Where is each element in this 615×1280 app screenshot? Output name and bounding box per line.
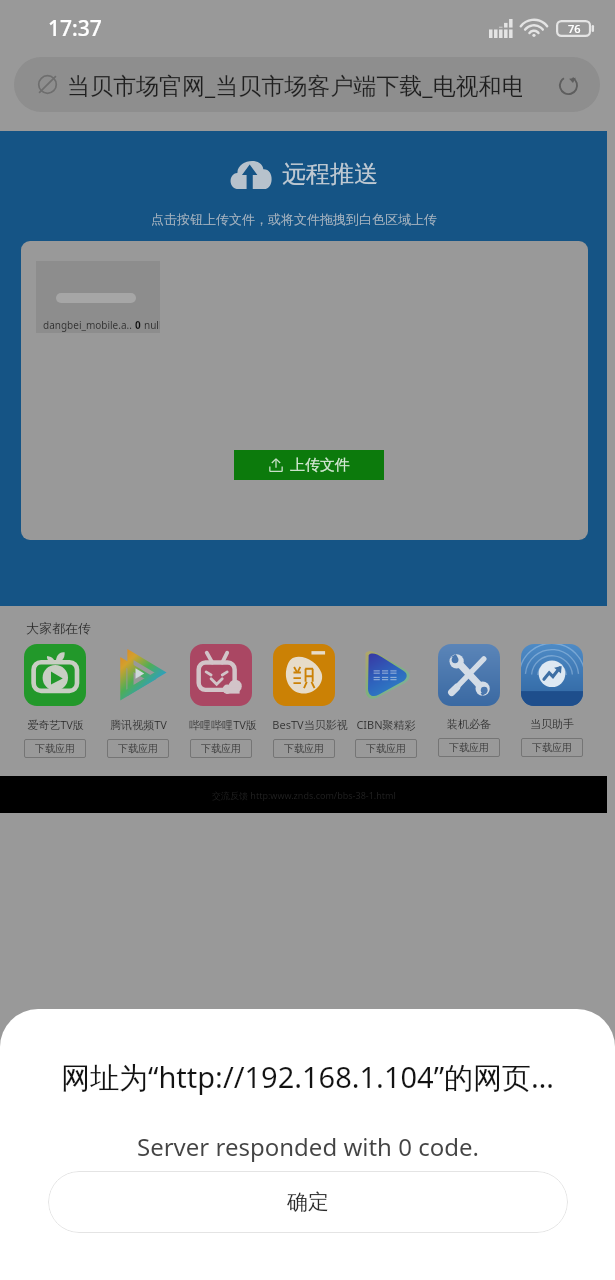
staticText: 确定 xyxy=(287,1189,329,1215)
staticText: null xyxy=(144,318,160,332)
staticText: 哔哩哔哩TV版 xyxy=(189,717,253,732)
staticText: 当贝助手 xyxy=(530,717,574,731)
button[interactable]: 下载应用 xyxy=(273,739,335,758)
button[interactable]: 哔哩哔哩TV版 xyxy=(189,644,253,758)
staticText: 点击按钮上传文件，或将文件拖拽到白色区域上传 xyxy=(151,211,437,227)
staticText: 交流反馈 http:www.znds.com/bbs-38-1.html xyxy=(212,789,396,801)
staticText: 腾讯视频TV xyxy=(110,717,167,732)
staticText: 当贝市场官网_当贝市场客户端下载_电视和电视盒子应用市场 xyxy=(67,69,522,100)
button[interactable]: 上传文件 xyxy=(234,450,384,480)
button[interactable]: 爱奇艺TV版 xyxy=(23,644,87,758)
button[interactable]: 下载应用 xyxy=(521,738,583,757)
button[interactable]: 装机必备 xyxy=(437,644,501,757)
staticText: Server responded with 0 code. xyxy=(137,1130,479,1163)
staticText: 下载应用 xyxy=(35,742,75,755)
staticText: 17:37 xyxy=(48,14,102,43)
staticText: 下载应用 xyxy=(532,741,572,754)
staticText: dangbei_mobile.a.. xyxy=(43,318,132,332)
button[interactable]: BesTV当贝影视 xyxy=(272,644,336,758)
button[interactable]: 确定 xyxy=(48,1171,568,1233)
button[interactable]: 腾讯视频TV xyxy=(106,644,170,758)
button[interactable]: 下载应用 xyxy=(24,739,86,758)
staticText: 大家都在传 xyxy=(26,620,91,636)
button[interactable]: 下载应用 xyxy=(438,738,500,757)
staticText: 下载应用 xyxy=(449,741,489,754)
button[interactable]: Reload xyxy=(546,63,590,107)
button[interactable]: 下载应用 xyxy=(355,739,417,758)
button[interactable]: 当贝市场官网_当贝市场客户端下载_电视和电视盒子应用市场 xyxy=(14,57,600,112)
staticText: 下载应用 xyxy=(284,742,324,755)
button[interactable]: 下载应用 xyxy=(107,739,169,758)
staticText: 上传文件 xyxy=(290,456,350,475)
staticText: 远程推送 xyxy=(282,159,378,189)
staticText: 爱奇艺TV版 xyxy=(27,717,84,732)
staticText: CIBN聚精彩 xyxy=(356,717,416,732)
staticText: 装机必备 xyxy=(447,717,491,731)
button[interactable]: 当贝助手 xyxy=(520,644,584,757)
staticText: 下载应用 xyxy=(201,742,241,755)
staticText: 网址为“http://192.168.1.104”的网页… xyxy=(61,1057,555,1097)
button[interactable]: CIBN聚精彩 xyxy=(354,644,418,758)
staticText: 0 xyxy=(135,318,141,332)
staticText: 下载应用 xyxy=(366,742,406,755)
staticText: BesTV当贝影视 xyxy=(272,717,336,732)
staticText: 下载应用 xyxy=(118,742,158,755)
button[interactable]: 下载应用 xyxy=(190,739,252,758)
staticText: 76 xyxy=(568,21,581,36)
